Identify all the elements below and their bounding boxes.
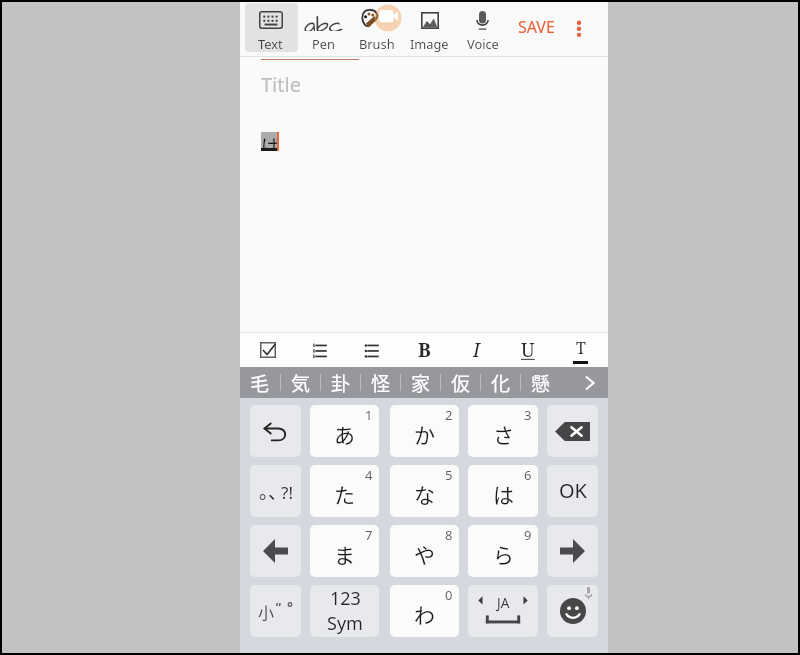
staticText: Title bbox=[261, 71, 301, 98]
staticText: Text bbox=[258, 35, 283, 52]
staticText: Image bbox=[410, 35, 449, 52]
button[interactable]: SAVE bbox=[509, 2, 563, 56]
staticText: あ bbox=[334, 419, 355, 449]
button[interactable]: Small letters and marks bbox=[250, 585, 301, 637]
button[interactable]: な bbox=[390, 465, 459, 517]
button[interactable]: OK bbox=[547, 465, 598, 517]
button[interactable]: 毛 bbox=[240, 367, 280, 398]
staticText: 5 bbox=[445, 466, 453, 484]
staticText: ｡､ bbox=[259, 477, 279, 505]
staticText: 卦 bbox=[331, 369, 351, 397]
button[interactable]: Checklist bbox=[242, 333, 294, 367]
button[interactable]: Brush bbox=[350, 2, 403, 56]
staticText: な bbox=[414, 479, 435, 509]
staticText: 2 bbox=[445, 406, 453, 424]
button[interactable]: 気 bbox=[281, 367, 320, 398]
button[interactable]: Numbers and symbols bbox=[310, 585, 379, 637]
staticText: ?! bbox=[281, 481, 293, 504]
staticText: や bbox=[414, 539, 435, 569]
staticText: 7 bbox=[365, 526, 373, 544]
button[interactable]: 懸 bbox=[521, 367, 560, 398]
staticText: 123 bbox=[330, 586, 361, 611]
staticText: 1 bbox=[365, 406, 373, 424]
button[interactable]: 家 bbox=[401, 367, 440, 398]
staticText: SAVE bbox=[518, 16, 555, 38]
button[interactable]: ら bbox=[468, 525, 538, 577]
button[interactable]: Undo bbox=[250, 405, 301, 457]
button[interactable]: Text bbox=[244, 2, 297, 56]
staticText: 6 bbox=[524, 466, 532, 484]
staticText: 4 bbox=[365, 466, 373, 484]
button[interactable]: ま bbox=[310, 525, 379, 577]
button[interactable]: Underline bbox=[502, 333, 554, 367]
staticText: か bbox=[414, 419, 435, 449]
staticText: 懸 bbox=[531, 369, 551, 397]
staticText: 8 bbox=[445, 526, 453, 544]
button[interactable]: Voice bbox=[456, 2, 509, 56]
button[interactable]: Numbered list bbox=[294, 333, 346, 367]
button[interactable]: Image bbox=[403, 2, 456, 56]
button[interactable]: か bbox=[390, 405, 459, 457]
button[interactable]: や bbox=[390, 525, 459, 577]
button[interactable]: Punctuation bbox=[250, 465, 301, 517]
button[interactable]: Move cursor left bbox=[250, 525, 301, 577]
button[interactable]: More options bbox=[563, 2, 595, 56]
button[interactable]: た bbox=[310, 465, 379, 517]
staticText: 家 bbox=[411, 369, 431, 397]
button[interactable]: Space bbox=[468, 585, 538, 637]
staticText: ら bbox=[493, 539, 514, 569]
staticText: I bbox=[473, 337, 480, 363]
staticText: 毛 bbox=[250, 369, 270, 397]
staticText: B bbox=[418, 337, 431, 363]
staticText: 化 bbox=[491, 369, 511, 397]
button[interactable]: abc bbox=[297, 2, 350, 56]
button[interactable]: Backspace bbox=[547, 405, 598, 457]
staticText: Sym bbox=[327, 611, 363, 636]
button[interactable]: More candidates bbox=[572, 367, 608, 398]
staticText: JA bbox=[497, 594, 510, 612]
button[interactable]: さ bbox=[468, 405, 538, 457]
staticText: さ bbox=[493, 419, 514, 449]
staticText: Voice bbox=[467, 35, 499, 52]
button[interactable]: 卦 bbox=[321, 367, 360, 398]
button[interactable]: 怪 bbox=[361, 367, 400, 398]
button[interactable]: わ bbox=[390, 585, 459, 637]
button[interactable]: 仮 bbox=[441, 367, 480, 398]
staticText: ま bbox=[334, 539, 355, 569]
button[interactable]: Bold bbox=[398, 333, 450, 367]
button[interactable]: Emoji and voice input bbox=[547, 585, 598, 637]
staticText: わ bbox=[414, 599, 435, 629]
staticText: け bbox=[261, 132, 277, 151]
button[interactable]: Move cursor right bbox=[547, 525, 598, 577]
staticText: 小 bbox=[258, 600, 275, 623]
button[interactable]: Italic bbox=[450, 333, 502, 367]
staticText: abc bbox=[304, 9, 344, 31]
staticText: は bbox=[493, 479, 514, 509]
button[interactable]: あ bbox=[310, 405, 379, 457]
staticText: Brush bbox=[359, 35, 395, 52]
button[interactable]: Text colour bbox=[554, 333, 606, 367]
staticText: T bbox=[576, 337, 586, 359]
button[interactable]: 化 bbox=[481, 367, 520, 398]
staticText: Pen bbox=[312, 35, 335, 52]
button[interactable]: Bulleted list bbox=[346, 333, 398, 367]
staticText: 気 bbox=[291, 369, 311, 397]
staticText: た bbox=[334, 479, 355, 509]
staticText: U bbox=[521, 337, 535, 363]
staticText: 9 bbox=[524, 526, 532, 544]
staticText: 仮 bbox=[451, 369, 471, 397]
staticText: 3 bbox=[524, 406, 532, 424]
staticText: OK bbox=[559, 477, 587, 504]
staticText: 0 bbox=[445, 586, 453, 604]
button[interactable]: は bbox=[468, 465, 538, 517]
staticText: 怪 bbox=[371, 369, 391, 397]
